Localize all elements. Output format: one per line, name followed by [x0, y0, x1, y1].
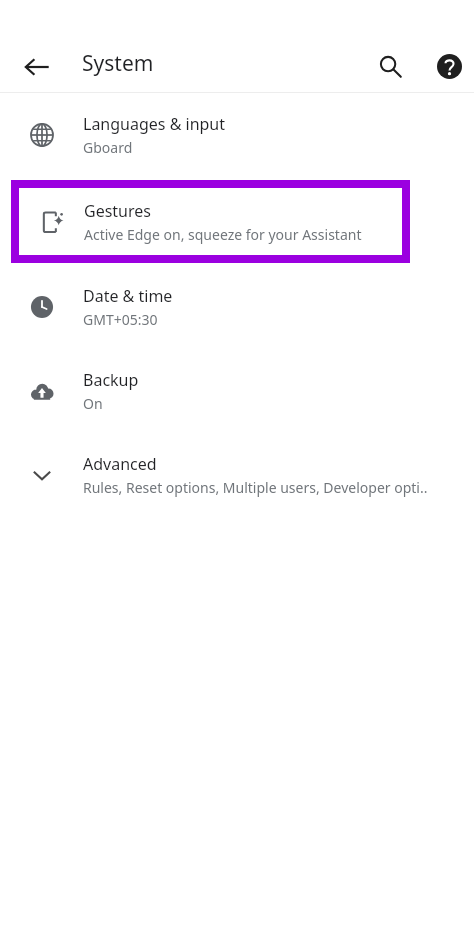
staticText: Rules, Reset options, Multiple users, De… [83, 478, 428, 497]
button[interactable]: Back [14, 44, 60, 90]
staticText: Date & time [83, 285, 173, 307]
staticText: GMT+05:30 [83, 310, 158, 329]
button[interactable]: Help [427, 44, 471, 88]
staticText: Languages & input [83, 113, 226, 135]
button[interactable]: Date & time [0, 267, 474, 349]
button[interactable]: Search [368, 44, 412, 88]
staticText: Gestures [84, 200, 151, 222]
staticText: On [83, 394, 103, 413]
button[interactable]: Backup [0, 349, 474, 433]
button[interactable]: Gestures [19, 188, 402, 255]
staticText: System [82, 49, 154, 78]
staticText: Advanced [83, 453, 157, 475]
button[interactable]: Languages & input [0, 93, 474, 177]
button[interactable]: Advanced [0, 433, 474, 517]
staticText: Backup [83, 369, 139, 391]
staticText: Active Edge on, squeeze for your Assista… [84, 225, 362, 244]
staticText: Gboard [83, 138, 133, 157]
